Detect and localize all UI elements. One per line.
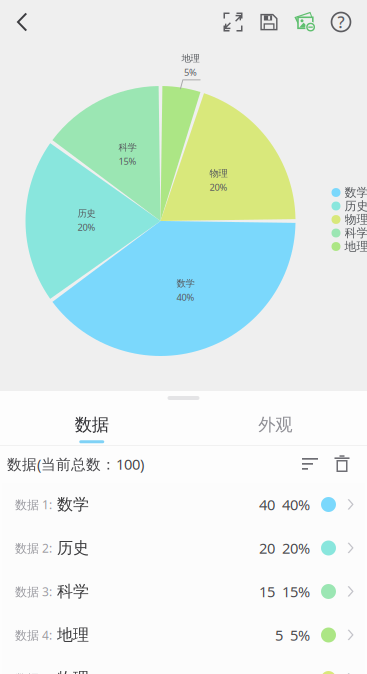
staticText: 15 [259, 582, 275, 601]
staticText: 20% [77, 221, 95, 233]
staticText: 数据 1: [15, 496, 52, 512]
staticText: 数学 [176, 278, 194, 289]
button[interactable]: Fullscreen [215, 4, 251, 40]
staticText: 历史 [344, 199, 367, 213]
button[interactable]: Delete all [327, 447, 357, 481]
staticText: 数据 [75, 414, 109, 435]
button[interactable]: Save [251, 4, 287, 40]
staticText: 地理 [344, 239, 367, 254]
staticText: 20% [282, 538, 310, 558]
staticText: 科学 [57, 582, 89, 601]
button[interactable]: Sort [293, 447, 327, 481]
staticText: 历史 [57, 538, 89, 558]
staticText: 物理 [57, 669, 89, 674]
staticText: 数据 4: [15, 627, 52, 643]
staticText: 40 [259, 495, 275, 514]
button[interactable]: 数据 1: [2, 483, 365, 526]
staticText: 数据(当前总数：100) [7, 454, 144, 474]
button[interactable]: 数据 5: [2, 657, 365, 674]
staticText: 外观 [258, 414, 292, 435]
staticText: 数据 2: [15, 540, 52, 556]
staticText: 15% [118, 155, 136, 167]
staticText: 数据 5: [15, 670, 52, 674]
button[interactable]: 数据 3: [2, 570, 365, 613]
staticText: 5 [275, 625, 283, 645]
staticText: 40% [282, 495, 310, 514]
staticText: 20 [259, 538, 275, 558]
staticText: 20% [209, 181, 227, 193]
button[interactable]: Help [323, 4, 359, 40]
button[interactable]: Export image [287, 4, 323, 40]
staticText: ? [337, 11, 344, 33]
staticText: 地理 [181, 53, 199, 64]
staticText: 40% [176, 291, 194, 303]
button[interactable]: 数据 [0, 404, 183, 445]
staticText: 数学 [344, 185, 367, 200]
staticText: 数据 3: [15, 583, 52, 599]
staticText: 物理 [344, 212, 367, 227]
button[interactable]: Back [4, 2, 40, 42]
staticText: 数学 [57, 495, 89, 514]
button[interactable]: 外观 [183, 404, 367, 445]
button[interactable]: 数据 4: [2, 613, 365, 656]
staticText: 物理 [209, 168, 227, 179]
staticText: 科学 [344, 226, 367, 240]
staticText: 历史 [77, 208, 95, 219]
staticText: 地理 [57, 625, 89, 645]
staticText: 5% [290, 625, 310, 645]
staticText: 15% [282, 582, 310, 601]
staticText: 5% [184, 66, 197, 78]
staticText: 科学 [118, 142, 136, 153]
button[interactable]: 数据 2: [2, 526, 365, 569]
